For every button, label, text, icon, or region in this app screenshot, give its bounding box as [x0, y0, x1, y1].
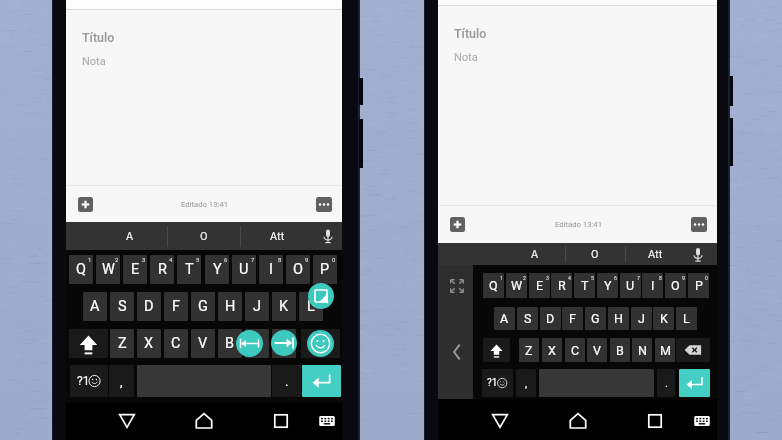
- button[interactable]: Y: [205, 255, 229, 284]
- button[interactable]: Z: [110, 329, 134, 358]
- button[interactable]: ,: [516, 369, 536, 397]
- button[interactable]: Shift: [483, 338, 510, 362]
- button[interactable]: G: [585, 307, 606, 330]
- button[interactable]: More options: [316, 197, 332, 212]
- button[interactable]: S: [517, 307, 538, 330]
- button[interactable]: Att: [625, 243, 685, 266]
- button[interactable]: Symbols and emoji: [70, 365, 108, 397]
- button[interactable]: Home: [562, 407, 594, 435]
- button[interactable]: C: [164, 329, 188, 358]
- button[interactable]: X: [542, 338, 562, 362]
- button[interactable]: .: [657, 369, 675, 397]
- button[interactable]: Z: [519, 338, 539, 362]
- button[interactable]: Back: [484, 407, 516, 435]
- button[interactable]: O: [286, 255, 310, 284]
- button[interactable]: Backspace: [301, 329, 340, 358]
- button[interactable]: Q: [69, 255, 93, 284]
- button[interactable]: Add: [450, 217, 465, 232]
- button[interactable]: T: [574, 273, 595, 298]
- button[interactable]: F: [562, 307, 583, 330]
- button[interactable]: Y: [597, 273, 618, 298]
- button[interactable]: N: [632, 338, 652, 362]
- button[interactable]: P: [688, 273, 709, 298]
- button[interactable]: Recent apps: [265, 407, 297, 435]
- button[interactable]: J: [631, 307, 652, 330]
- staticText: D: [546, 311, 555, 326]
- button[interactable]: Back: [111, 407, 143, 435]
- staticText: E: [536, 278, 544, 293]
- button[interactable]: E: [123, 255, 147, 284]
- button[interactable]: K: [272, 292, 296, 321]
- button[interactable]: Voice input: [684, 243, 712, 266]
- button[interactable]: Voice input: [314, 222, 342, 250]
- button[interactable]: T: [177, 255, 201, 284]
- button[interactable]: I: [259, 255, 283, 284]
- staticText: X: [548, 343, 556, 358]
- button[interactable]: Emoji: [307, 330, 334, 357]
- button[interactable]: M: [655, 338, 675, 362]
- button[interactable]: Full size keyboard: [444, 273, 470, 299]
- button[interactable]: P: [313, 255, 337, 284]
- button[interactable]: I: [642, 273, 663, 298]
- button[interactable]: G: [191, 292, 215, 321]
- button[interactable]: U: [232, 255, 256, 284]
- button[interactable]: Switch keyboard: [686, 407, 718, 435]
- button[interactable]: D: [540, 307, 561, 330]
- button[interactable]: E: [529, 273, 550, 298]
- button[interactable]: F: [164, 292, 188, 321]
- button[interactable]: A: [494, 307, 515, 330]
- button[interactable]: H: [218, 292, 242, 321]
- button[interactable]: Att: [240, 222, 314, 250]
- button[interactable]: More options: [691, 217, 707, 232]
- button[interactable]: L: [676, 307, 697, 330]
- button[interactable]: J: [245, 292, 269, 321]
- button[interactable]: Enter: [302, 365, 341, 397]
- button[interactable]: A: [83, 292, 107, 321]
- button[interactable]: U: [620, 273, 641, 298]
- button[interactable]: One handed mode: [308, 283, 334, 309]
- staticText: 6: [614, 275, 617, 281]
- button[interactable]: B: [218, 329, 242, 358]
- button[interactable]: .: [272, 365, 301, 397]
- staticText: Título: [82, 30, 115, 45]
- staticText: N: [252, 335, 263, 352]
- button[interactable]: Backspace: [676, 338, 710, 362]
- button[interactable]: B: [610, 338, 630, 362]
- button[interactable]: Shift: [69, 329, 108, 358]
- button[interactable]: Q: [483, 273, 504, 298]
- button[interactable]: Move cursor to start: [236, 330, 263, 357]
- button[interactable]: V: [587, 338, 607, 362]
- button[interactable]: W: [506, 273, 527, 298]
- button[interactable]: Switch keyboard: [311, 407, 343, 435]
- button[interactable]: O: [665, 273, 686, 298]
- button[interactable]: Move keyboard left: [444, 339, 470, 365]
- button[interactable]: H: [608, 307, 629, 330]
- button[interactable]: ,: [109, 365, 134, 397]
- button[interactable]: Enter: [679, 369, 710, 397]
- button[interactable]: L: [299, 292, 323, 321]
- button[interactable]: O: [565, 243, 625, 266]
- button[interactable]: S: [110, 292, 134, 321]
- button[interactable]: M: [272, 329, 296, 358]
- button[interactable]: Home: [188, 407, 220, 435]
- staticText: Z: [525, 343, 533, 358]
- button[interactable]: R: [551, 273, 572, 298]
- button[interactable]: W: [96, 255, 120, 284]
- button[interactable]: V: [191, 329, 215, 358]
- button[interactable]: Symbols and emoji: [482, 369, 513, 397]
- button[interactable]: C: [565, 338, 585, 362]
- button[interactable]: N: [245, 329, 269, 358]
- button[interactable]: Recent apps: [639, 407, 671, 435]
- button[interactable]: X: [137, 329, 161, 358]
- staticText: 6: [224, 257, 228, 264]
- button[interactable]: Move cursor to end: [271, 330, 297, 356]
- button[interactable]: Add: [78, 197, 93, 212]
- button[interactable]: K: [653, 307, 674, 330]
- button[interactable]: A: [505, 243, 565, 266]
- button[interactable]: O: [167, 222, 241, 250]
- button[interactable]: D: [137, 292, 161, 321]
- button[interactable]: R: [150, 255, 174, 284]
- button[interactable]: A: [93, 222, 167, 250]
